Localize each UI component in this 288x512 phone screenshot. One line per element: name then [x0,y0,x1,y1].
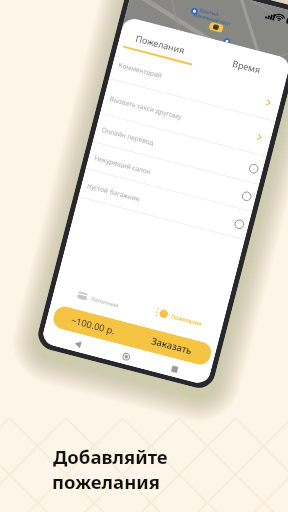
button[interactable]: Некурящий салон [85,142,259,212]
button[interactable]: Онлайн перевод [92,114,266,185]
staticText: Некурящий салон [93,153,152,176]
button[interactable]: Пожелания [156,306,210,332]
staticText: пожелания [52,469,160,494]
staticText: Вызвать такси другому [109,94,183,121]
staticText: Комментарий [118,60,163,80]
staticText: манежный корт [193,11,232,28]
staticText: пустой багажник [86,181,141,203]
button[interactable]: пустой багажник [78,170,252,240]
staticText: Пожелания [134,32,186,56]
staticText: Крытый [199,7,220,19]
button[interactable]: Вызвать такси другому [100,80,275,157]
button[interactable]: Время [200,38,288,93]
staticText: Заказать [150,334,194,357]
button[interactable]: Комментарий [109,46,284,122]
button[interactable]: ~100.00 р. [51,304,214,367]
button[interactable]: Пожелания [116,16,203,70]
button[interactable]: Home [115,345,138,366]
button[interactable]: Recent apps [164,358,186,379]
button[interactable]: Наличные [76,288,124,312]
staticText: Наличные [90,295,120,310]
staticText: Добавляйте [53,444,168,469]
staticText: Онлайн перевод [101,125,155,147]
staticText: ~100.00 р. [70,313,116,337]
button[interactable]: Back [67,333,89,354]
staticText: Пожелания [170,312,203,328]
staticText: Время [231,57,262,76]
